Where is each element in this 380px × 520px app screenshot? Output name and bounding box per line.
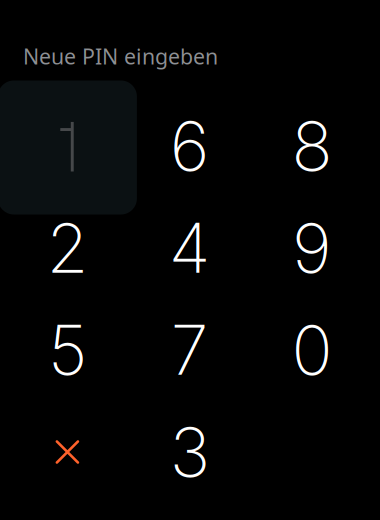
staticText: 4 — [169, 207, 211, 289]
staticText: 5 — [48, 309, 87, 391]
button[interactable]: 4 — [129, 197, 251, 299]
staticText: 3 — [170, 411, 210, 493]
button[interactable]: 3 — [129, 401, 251, 503]
staticText: 7 — [171, 309, 209, 391]
staticText: 8 — [291, 105, 332, 187]
staticText: Neue PIN eingeben — [23, 42, 218, 70]
button[interactable]: 0 — [251, 299, 373, 401]
staticText: 2 — [46, 207, 88, 289]
button[interactable]: 7 — [129, 299, 251, 401]
button[interactable]: Löschen — [6, 401, 128, 503]
staticText: 9 — [292, 207, 332, 289]
button[interactable]: 6 — [129, 95, 251, 197]
button[interactable] — [6, 95, 128, 197]
staticText: 0 — [291, 309, 332, 391]
button[interactable]: 9 — [251, 197, 373, 299]
button[interactable]: 2 — [6, 197, 128, 299]
button[interactable]: 5 — [6, 299, 128, 401]
staticText: 6 — [170, 105, 210, 187]
button[interactable]: 8 — [251, 95, 373, 197]
